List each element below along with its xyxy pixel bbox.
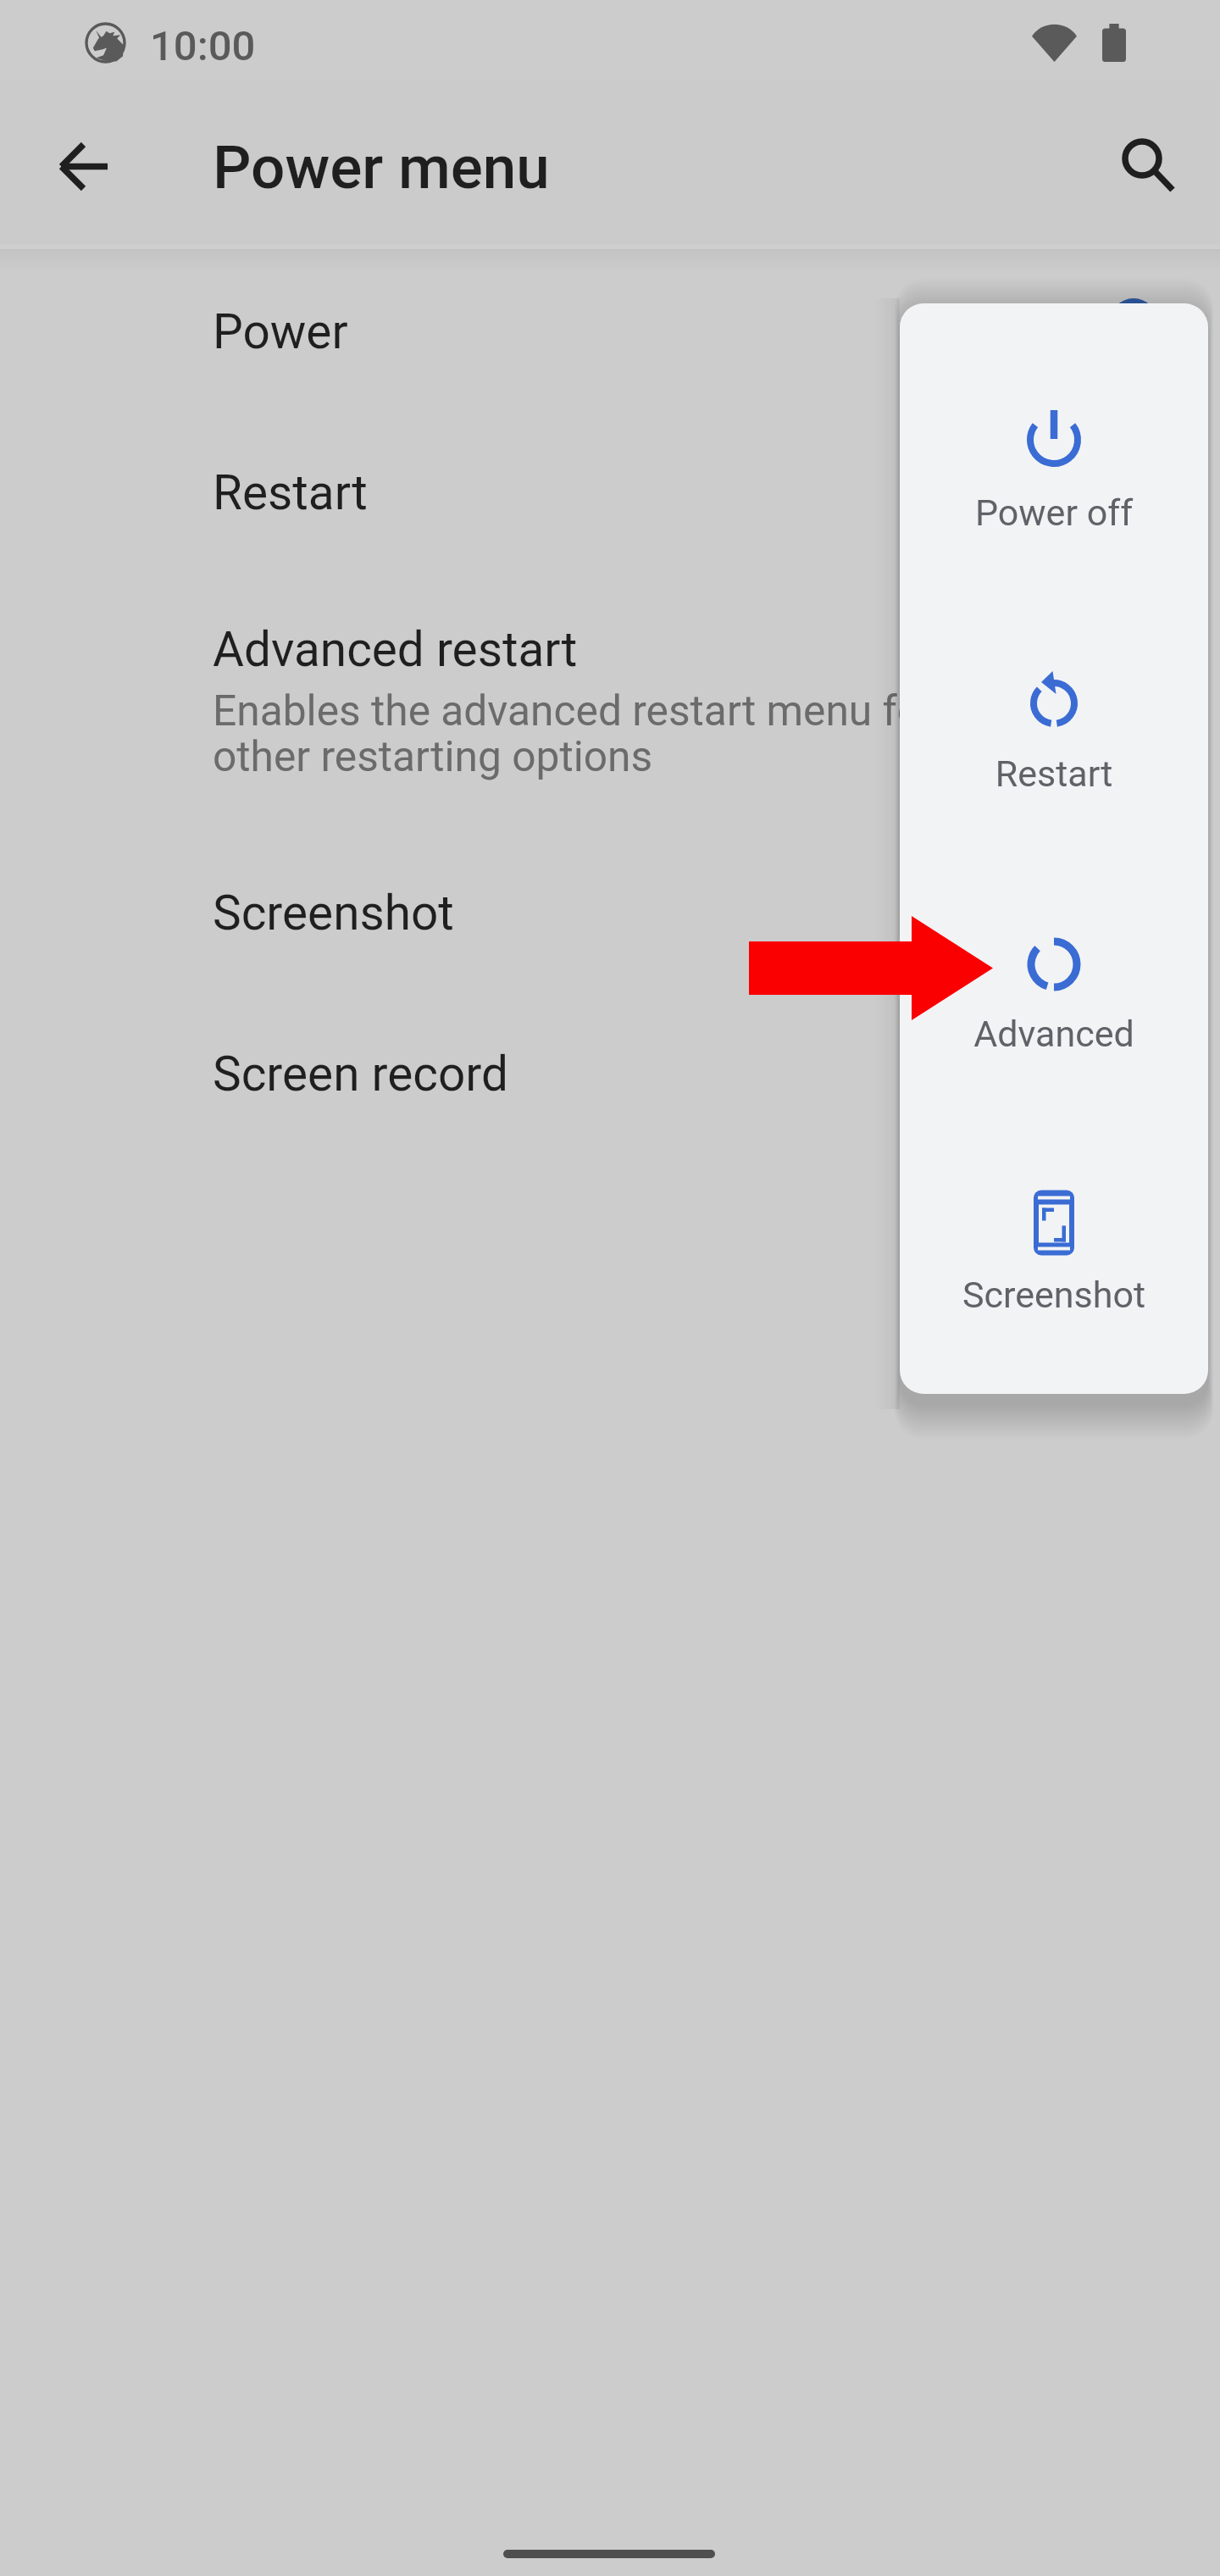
staticText: Screenshot (213, 885, 454, 941)
button[interactable]: Power (0, 263, 1220, 424)
staticText: Advanced (900, 1013, 1208, 1055)
staticText: Enables the advanced restart menu for ot… (213, 686, 936, 781)
staticText: Screenshot (900, 1274, 1208, 1316)
staticText: Power menu (213, 132, 550, 203)
button[interactable]: Screenshot (0, 844, 1220, 1005)
staticText: 10:00 (150, 22, 256, 70)
button[interactable]: Advanced restart (0, 580, 1220, 835)
button[interactable]: Screen record (0, 1005, 1220, 1166)
staticText: Screen record (213, 1046, 508, 1102)
button[interactable]: Power off (900, 359, 1208, 571)
button[interactable]: Restart (900, 623, 1208, 835)
button[interactable]: Advanced (900, 884, 1208, 1096)
staticText: Power (213, 303, 348, 359)
button[interactable]: Screenshot (900, 1142, 1208, 1354)
staticText: Advanced restart (213, 621, 578, 677)
button[interactable]: Navigate up (4, 109, 114, 219)
button[interactable]: Restart (0, 424, 1220, 585)
staticText: Restart (900, 752, 1208, 795)
staticText: Power off (900, 491, 1208, 534)
staticText: Restart (213, 464, 368, 520)
button[interactable]: Search (1087, 109, 1197, 219)
